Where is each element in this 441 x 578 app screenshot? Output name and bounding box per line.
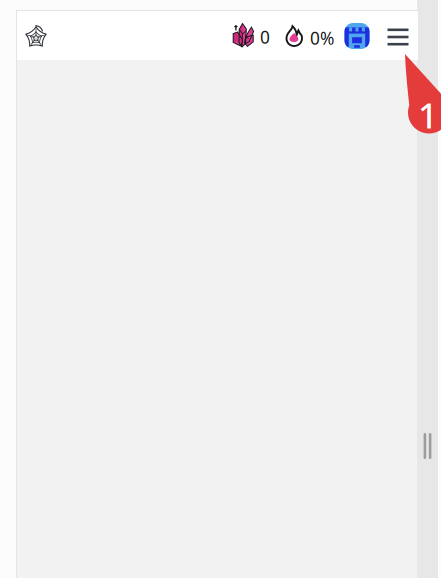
button[interactable]: Gems bbox=[231, 16, 275, 54]
staticText: 1 bbox=[418, 92, 438, 138]
staticText: 0% bbox=[310, 26, 334, 49]
button[interactable]: Open panel bbox=[417, 418, 438, 474]
button[interactable]: Home bbox=[16, 16, 56, 56]
staticText: 0 bbox=[260, 25, 270, 48]
button[interactable]: Rewards bbox=[340, 17, 374, 55]
button[interactable]: Menu bbox=[383, 18, 413, 56]
button[interactable]: Streak bbox=[285, 17, 339, 55]
